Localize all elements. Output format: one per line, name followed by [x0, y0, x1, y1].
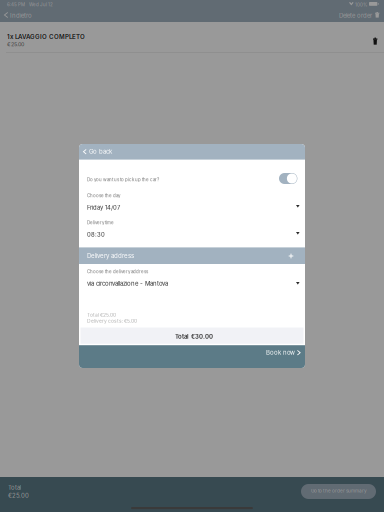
staticText: Book now [266, 349, 295, 356]
staticText: 1x LAVAGGIO COMPLETO [7, 33, 85, 40]
staticText: Delivery time [87, 220, 114, 225]
button[interactable]: Add address [286, 251, 296, 261]
staticText: via circonvallazione - Mantova [87, 280, 168, 287]
staticText: €25.00 [7, 41, 24, 47]
button[interactable]: Go to the order summary [301, 484, 376, 499]
staticText: Indietro [10, 12, 32, 19]
staticText: Do you want us to pick up the car? [87, 177, 159, 182]
staticText: 100% [355, 2, 367, 7]
button[interactable]: via circonvallazione - Mantova [87, 276, 300, 288]
staticText: Choose the day [87, 193, 120, 198]
button[interactable]: Friday 14/07 [87, 200, 300, 212]
button[interactable]: Delete order [334, 8, 382, 22]
staticText: €25.00 [8, 492, 29, 499]
button[interactable]: Indietro [0, 8, 40, 22]
button[interactable]: Remove item [368, 33, 382, 49]
staticText: Delivery costs: €5.00 [87, 318, 137, 324]
staticText: Total €30.00 [175, 333, 213, 340]
staticText: 08:30 [87, 231, 105, 238]
staticText: Go back [89, 148, 112, 155]
staticText: Total €25.00 [87, 312, 116, 318]
button[interactable]: Go back [79, 144, 123, 160]
staticText: Friday 14/07 [87, 204, 120, 211]
button[interactable]: Book now [260, 346, 305, 358]
staticText: 6:45 PM [7, 2, 25, 7]
staticText: Delete order [339, 12, 372, 19]
button[interactable]: 08:30 [87, 227, 300, 239]
staticText: Total [8, 484, 21, 491]
staticText: Choose the delivery address [87, 269, 148, 274]
staticText: Go to the order summary [311, 488, 367, 494]
staticText: Delivery address [87, 252, 134, 259]
button[interactable]: Pick up the car [278, 172, 298, 185]
staticText: Wed Jul 12 [29, 2, 53, 7]
